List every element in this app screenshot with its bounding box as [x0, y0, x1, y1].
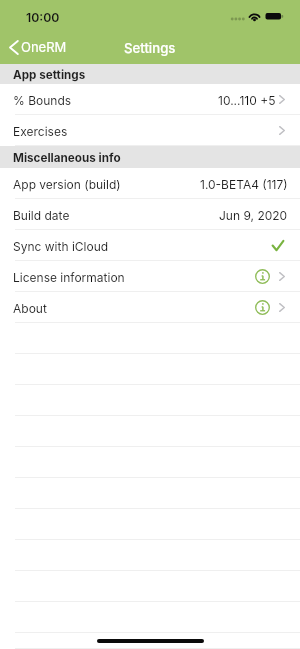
button[interactable]: Build date: [0, 199, 300, 230]
staticText: % Bounds: [13, 93, 72, 108]
staticText: License information: [13, 270, 125, 285]
staticText: Build date: [13, 208, 70, 223]
button[interactable]: License information: [0, 261, 300, 292]
staticText: About: [13, 301, 47, 316]
button[interactable]: Back to OneRM: [0, 30, 75, 64]
staticText: Jun 9, 2020: [219, 208, 288, 223]
button[interactable]: Exercises: [0, 115, 300, 146]
staticText: Exercises: [13, 124, 68, 139]
button[interactable]: More info: [255, 269, 270, 284]
button[interactable]: About: [0, 292, 300, 323]
staticText: App settings: [13, 68, 86, 82]
button[interactable]: App version (build): [0, 168, 300, 199]
staticText: App version (build): [13, 177, 121, 192]
staticText: OneRM: [21, 39, 67, 55]
button[interactable]: More info: [255, 300, 270, 315]
button[interactable]: % Bounds: [0, 84, 300, 115]
staticText: 10...110 +5: [218, 93, 276, 108]
staticText: 1.0-BETA4 (117): [200, 177, 288, 192]
staticText: Settings: [124, 40, 176, 56]
staticText: Miscellaneous info: [13, 151, 121, 165]
staticText: Sync with iCloud: [13, 239, 109, 254]
button[interactable]: Sync with iCloud: [0, 230, 300, 261]
staticText: 10:00: [26, 10, 60, 25]
